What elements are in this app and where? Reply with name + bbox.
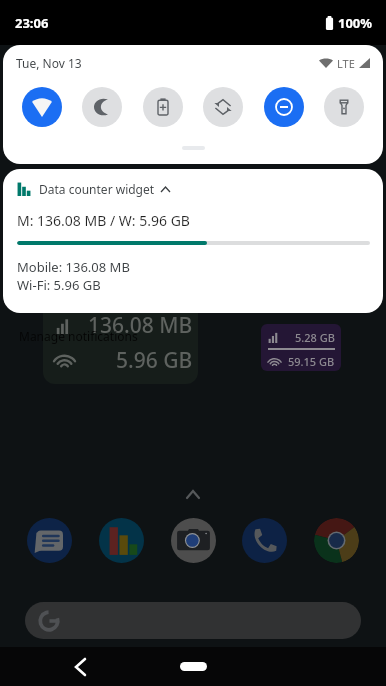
button[interactable]: Open app drawer (187, 491, 199, 498)
button[interactable]: Dark theme (82, 87, 122, 127)
staticText: Wi-Fi: 5.96 GB (17, 276, 101, 294)
staticText: M: 136.08 MB / W: 5.96 GB (17, 211, 190, 230)
staticText: Tue, Nov 13 (16, 55, 82, 71)
button[interactable]: 136.08 MB (43, 300, 198, 384)
staticText: 23:06 (15, 14, 49, 32)
button[interactable]: 5.28 GB (261, 324, 341, 371)
button[interactable]: Messages (27, 518, 72, 563)
button[interactable]: Camera (171, 518, 216, 563)
button[interactable]: Battery saver (143, 87, 183, 127)
button[interactable]: Flashlight (324, 87, 364, 127)
button[interactable]: Auto rotate (203, 87, 243, 127)
button[interactable]: Manage notifications (19, 328, 138, 344)
button[interactable]: Data counter (99, 518, 144, 563)
button[interactable]: Data counter widget (3, 169, 383, 313)
button[interactable]: Search (25, 602, 361, 639)
staticText: 5.96 GB (116, 346, 193, 375)
staticText: 5.28 GB (295, 330, 335, 345)
button[interactable]: Wi-Fi (22, 87, 62, 127)
staticText: 100% (338, 14, 373, 32)
staticText: 59.15 GB (288, 354, 335, 369)
staticText: LTE (337, 56, 355, 71)
staticText: Mobile: 136.08 MB (17, 258, 130, 276)
button[interactable]: Home (180, 662, 207, 671)
button[interactable]: Back (76, 659, 85, 675)
button[interactable]: Chrome (314, 518, 359, 563)
staticText: Data counter widget (39, 181, 155, 197)
button[interactable]: Do not disturb (264, 87, 304, 127)
staticText: 136.08 MB (88, 311, 193, 340)
button[interactable]: Phone (242, 518, 287, 563)
